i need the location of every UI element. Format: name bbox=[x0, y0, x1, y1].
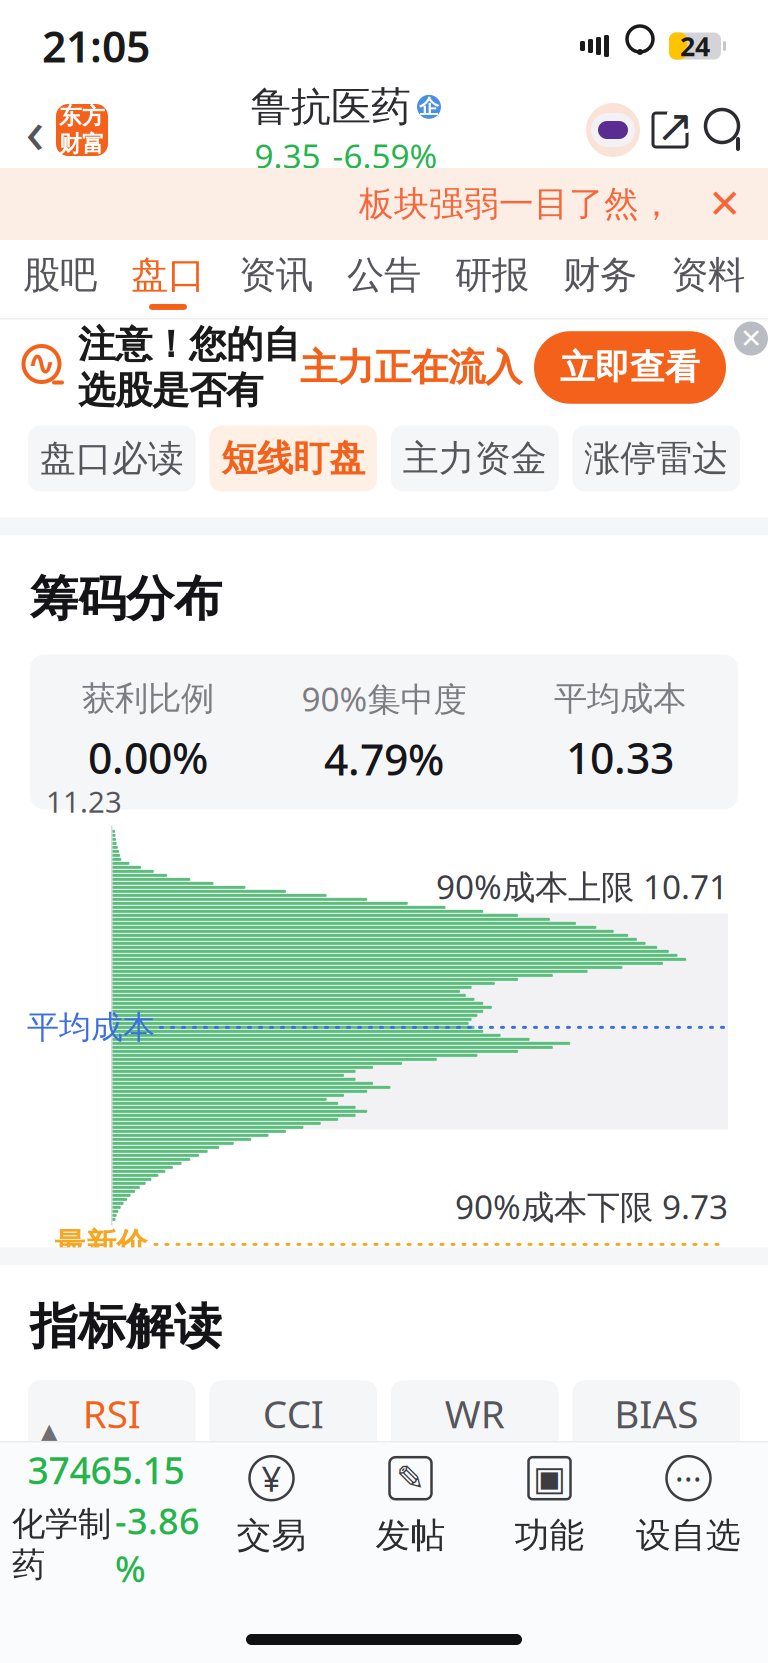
staticText: 11.23 bbox=[46, 782, 122, 821]
staticText: 资料 bbox=[671, 252, 745, 298]
staticText: 24 bbox=[680, 28, 710, 64]
button[interactable]: ▣ bbox=[480, 1454, 619, 1557]
staticText: 立即查看 bbox=[560, 346, 700, 389]
staticText: 指标解读 bbox=[30, 1297, 222, 1356]
button[interactable]: 股吧 bbox=[6, 236, 114, 322]
staticText: 研报 bbox=[455, 252, 529, 298]
staticText: ¥ bbox=[261, 1455, 281, 1501]
button[interactable]: Back bbox=[14, 99, 56, 161]
staticText: 资讯 bbox=[239, 252, 313, 298]
button[interactable]: AI 助手 bbox=[584, 101, 642, 159]
staticText: 90%成本上限 10.71 bbox=[436, 864, 728, 908]
staticText: 盘口 bbox=[131, 252, 205, 298]
staticText: ✕ bbox=[740, 323, 762, 354]
staticText: ▣ bbox=[533, 1458, 566, 1498]
staticText: 财富 bbox=[59, 130, 105, 158]
button[interactable]: 盘口 bbox=[114, 236, 222, 322]
button[interactable]: RSI bbox=[28, 1380, 195, 1458]
staticText: 0.00% bbox=[88, 729, 208, 786]
button[interactable]: Search bbox=[698, 101, 754, 159]
staticText: 90%集中度 bbox=[301, 676, 466, 721]
button[interactable]: Share bbox=[642, 101, 698, 159]
staticText: 37465.15 bbox=[27, 1445, 184, 1495]
staticText: KDJ bbox=[262, 1480, 325, 1531]
button[interactable]: 短线盯盘 bbox=[209, 425, 377, 491]
button[interactable]: CCI bbox=[209, 1380, 377, 1458]
button[interactable]: MACD bbox=[28, 1472, 195, 1550]
staticText: WR bbox=[445, 1388, 505, 1439]
staticText: 21:05 bbox=[42, 18, 150, 74]
staticText: 交易 bbox=[236, 1514, 306, 1557]
staticText: 化学制药 bbox=[12, 1503, 111, 1585]
button[interactable]: 财务 bbox=[546, 236, 654, 322]
staticText: 筹码分布 bbox=[30, 569, 222, 628]
staticText: 最新价 bbox=[54, 1225, 147, 1263]
staticText: 板块强弱一目了然， bbox=[359, 183, 674, 225]
staticText: 盘口必读 bbox=[40, 436, 184, 481]
staticText: 涨停雷达 bbox=[584, 436, 728, 481]
button[interactable]: 资料 bbox=[654, 236, 762, 322]
button[interactable]: ··· bbox=[619, 1454, 758, 1557]
button[interactable]: 化学制药 指数 bbox=[10, 1419, 202, 1592]
staticText: 90%成本下限 9.73 bbox=[455, 1184, 728, 1228]
staticText: ··· bbox=[675, 1457, 702, 1499]
button[interactable]: BOLL bbox=[391, 1472, 558, 1550]
staticText: 鲁抗医药 bbox=[251, 82, 411, 131]
button[interactable]: 盘口必读 bbox=[28, 425, 195, 491]
staticText: 股吧 bbox=[23, 252, 97, 298]
staticText: 主力资金 bbox=[403, 436, 547, 481]
staticText: -6.59% bbox=[332, 133, 437, 178]
staticText: 获利比例 bbox=[82, 678, 214, 719]
staticText: ✎ bbox=[396, 1458, 425, 1498]
staticText: ↗ bbox=[656, 100, 694, 152]
staticText: 财务 bbox=[563, 252, 637, 298]
button[interactable]: WR bbox=[391, 1380, 558, 1458]
staticText: ▲ bbox=[41, 1419, 57, 1443]
staticText: 主力正在流入 bbox=[300, 345, 522, 390]
button[interactable]: 主力资金 bbox=[391, 425, 558, 491]
staticText: 发帖 bbox=[375, 1514, 445, 1557]
staticText: 公告 bbox=[347, 252, 421, 298]
button[interactable]: BIAS bbox=[572, 1380, 740, 1458]
button[interactable]: ¥ bbox=[202, 1454, 341, 1557]
button[interactable]: 立即查看主力资金流入 bbox=[0, 319, 768, 415]
staticText: -3.86% bbox=[115, 1497, 200, 1592]
button[interactable]: 涨停雷达 bbox=[572, 425, 740, 491]
staticText: 4.79% bbox=[324, 731, 444, 787]
staticText: 9.35 bbox=[254, 133, 320, 178]
button[interactable]: 资讯 bbox=[222, 236, 330, 322]
staticText: 平均成本 bbox=[554, 678, 686, 719]
button[interactable]: 公告 bbox=[330, 236, 438, 322]
button[interactable]: 推广横幅 bbox=[0, 168, 768, 240]
button[interactable]: KDJ bbox=[209, 1472, 377, 1550]
staticText: 注意！您的自选股是否有 bbox=[78, 322, 300, 413]
staticText: BIAS bbox=[614, 1388, 698, 1439]
staticText: 平均成本 bbox=[27, 1008, 155, 1047]
staticText: 东方 bbox=[59, 102, 105, 130]
staticText: 短线盯盘 bbox=[221, 436, 365, 481]
staticText: ✕ bbox=[708, 181, 742, 227]
staticText: 功能 bbox=[514, 1514, 584, 1557]
button[interactable]: 关闭广告 bbox=[734, 321, 768, 355]
staticText: ∿ bbox=[27, 343, 56, 383]
staticText: 10.33 bbox=[566, 729, 674, 786]
staticText: MACD bbox=[56, 1480, 167, 1531]
staticText: CCI bbox=[263, 1388, 324, 1439]
staticText: RSI bbox=[83, 1388, 141, 1439]
staticText: 企 bbox=[419, 95, 439, 119]
staticText: ‹ bbox=[25, 89, 44, 171]
button[interactable]: 东方财富 bbox=[56, 104, 108, 156]
staticText: 设自选 bbox=[636, 1514, 741, 1557]
staticText: BOLL bbox=[427, 1480, 522, 1531]
button[interactable]: ✎ bbox=[341, 1454, 480, 1557]
button[interactable]: 研报 bbox=[438, 236, 546, 322]
